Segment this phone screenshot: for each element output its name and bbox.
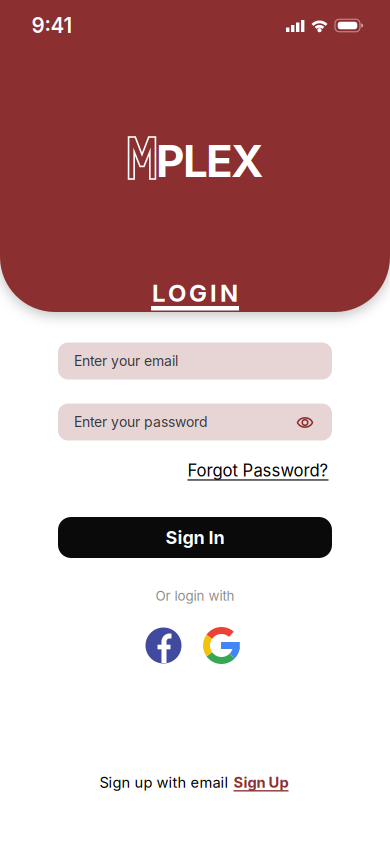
staticText: Enter your email: [74, 352, 178, 369]
button[interactable]: Log in with Google: [202, 626, 240, 664]
staticText: LOGIN: [152, 278, 238, 307]
staticText: Sign up with email: [99, 774, 228, 791]
staticText: PLEX: [156, 134, 263, 188]
staticText: 9:41: [31, 13, 72, 38]
staticText: Sign Up: [233, 774, 288, 791]
button[interactable]: Sign Up: [233, 774, 288, 791]
button[interactable]: Forgot Password?: [187, 460, 328, 481]
button[interactable]: Enter your email: [58, 342, 332, 379]
button[interactable]: Enter your password: [58, 403, 332, 440]
button[interactable]: Sign In: [58, 517, 332, 558]
button[interactable]: Log in with Facebook: [145, 627, 181, 663]
staticText: Forgot Password?: [187, 460, 328, 481]
staticText: Or login with: [155, 588, 234, 604]
button[interactable]: Show password: [295, 415, 315, 429]
staticText: Sign In: [165, 527, 224, 548]
staticText: Enter your password: [74, 413, 208, 430]
